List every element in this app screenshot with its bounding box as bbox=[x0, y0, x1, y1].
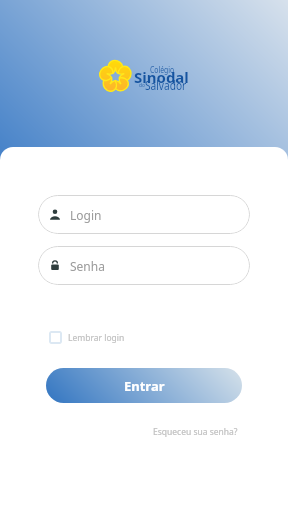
other: Password bbox=[50, 260, 60, 271]
staticText: Entrar bbox=[124, 377, 165, 395]
staticText: Salvador bbox=[145, 76, 186, 94]
staticText: Sinodal bbox=[134, 67, 189, 87]
button[interactable]: Esqueceu sua senha? bbox=[153, 426, 238, 438]
staticText: Colégio bbox=[150, 63, 174, 76]
staticText: Lembrar login bbox=[68, 332, 125, 344]
staticText: Login bbox=[70, 207, 102, 223]
button[interactable]: User bbox=[38, 195, 250, 234]
button[interactable]: Entrar bbox=[46, 368, 242, 403]
button[interactable]: Password bbox=[38, 246, 250, 285]
staticText: do bbox=[139, 81, 145, 89]
staticText: Senha bbox=[70, 258, 105, 274]
button[interactable]: Lembrar login bbox=[49, 331, 125, 344]
other: User bbox=[50, 209, 60, 220]
